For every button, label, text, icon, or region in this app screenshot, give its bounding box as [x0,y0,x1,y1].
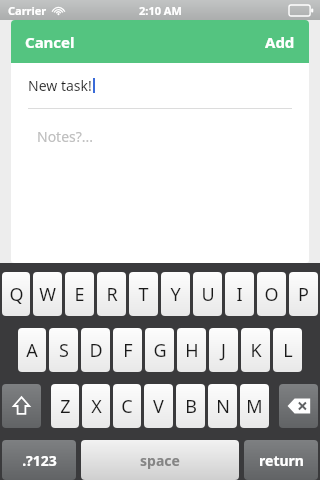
staticText: J [221,338,226,363]
staticText: Y [170,282,181,307]
button[interactable]: Notes?... [11,109,309,263]
button[interactable]: A [18,328,46,372]
button[interactable]: .?123 [2,440,76,480]
staticText: R [106,282,118,307]
button[interactable]: Add [251,24,309,60]
staticText: A [26,338,38,363]
button[interactable]: N [208,384,237,428]
button[interactable]: Backspace [279,384,318,428]
button[interactable]: M [240,384,269,428]
staticText: G [153,338,167,363]
staticText: 2:10 AM [139,3,182,18]
staticText: D [89,338,103,363]
button[interactable]: F [113,328,142,372]
staticText: space [140,451,180,470]
staticText: S [59,338,69,363]
staticText: N [216,394,230,419]
button[interactable]: space [81,440,239,480]
staticText: Notes?... [37,127,94,146]
staticText: Z [60,394,71,419]
button[interactable]: I [225,272,254,316]
button[interactable]: C [113,384,141,428]
button[interactable]: K [241,328,270,372]
button[interactable]: New task! [11,63,309,108]
staticText: Carrier [8,3,47,18]
button[interactable]: return [244,440,318,480]
staticText: P [298,282,309,307]
button[interactable]: E [65,272,94,316]
staticText: H [185,338,199,363]
button[interactable]: P [289,272,318,316]
staticText: O [264,282,279,307]
button[interactable]: J [209,328,238,372]
button[interactable]: W [33,272,62,316]
button[interactable]: X [82,384,110,428]
staticText: Q [9,282,24,307]
staticText: Cancel [25,32,75,52]
button[interactable]: U [193,272,222,316]
button[interactable]: O [257,272,286,316]
button[interactable]: G [145,328,174,372]
staticText: U [201,282,215,307]
staticText: B [185,394,197,419]
staticText: I [236,282,243,307]
button[interactable]: S [49,328,78,372]
staticText: .?123 [22,451,57,470]
button[interactable]: Y [161,272,190,316]
staticText: New task! [28,76,92,95]
staticText: E [74,282,85,307]
staticText: X [91,394,102,419]
button[interactable]: Cancel [11,24,89,60]
staticText: T [138,282,149,307]
staticText: C [121,394,133,419]
staticText: L [283,338,293,363]
staticText: W [39,282,56,307]
button[interactable]: R [97,272,126,316]
button[interactable]: L [273,328,302,372]
staticText: V [153,394,164,419]
button[interactable]: B [176,384,205,428]
button[interactable]: D [81,328,110,372]
button[interactable]: V [144,384,173,428]
staticText: F [123,338,133,363]
staticText: K [250,338,262,363]
button[interactable]: H [177,328,206,372]
staticText: return [259,451,304,470]
staticText: M [246,394,263,419]
button[interactable]: Q [2,272,30,316]
button[interactable]: T [129,272,158,316]
button[interactable]: Shift [2,384,41,428]
staticText: Add [265,32,295,52]
button[interactable]: Z [51,384,79,428]
